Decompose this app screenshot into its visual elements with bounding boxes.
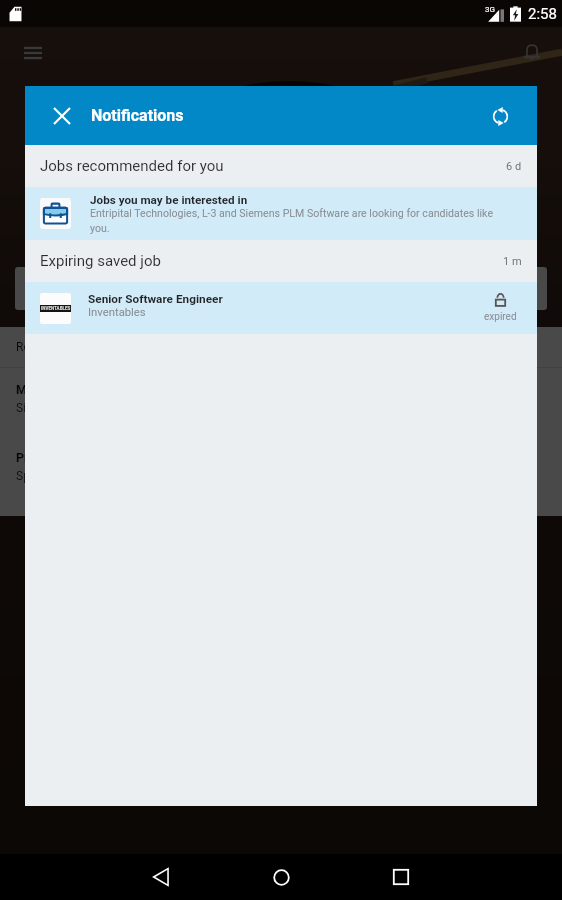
- button[interactable]: INVENTABLES: [25, 282, 537, 334]
- button[interactable]: Refresh: [481, 97, 519, 135]
- staticText: Recommended for you: [16, 340, 137, 354]
- staticText: Jobs recommended for you: [40, 157, 224, 175]
- staticText: 2:58: [528, 5, 557, 23]
- button[interactable]: Jobs you may be interested in: [25, 187, 537, 240]
- staticText: Expiring saved job: [40, 252, 161, 270]
- button[interactable]: [15, 267, 547, 310]
- staticText: Jobs you may be interested in: [90, 193, 248, 207]
- staticText: Product Designer: [16, 450, 114, 465]
- button[interactable]: Back: [131, 854, 191, 900]
- staticText: Notifications: [91, 106, 184, 125]
- staticText: Entripital Technologies, L-3 and Siemens…: [90, 207, 498, 234]
- button[interactable]: Mechanical Engineer: [0, 368, 562, 436]
- staticText: Mechanical Engineer: [16, 382, 134, 397]
- staticText: 6 d: [506, 160, 522, 173]
- staticText: Siemens: [16, 401, 63, 415]
- button[interactable]: Menu: [13, 33, 53, 73]
- button[interactable]: Recents: [371, 854, 431, 900]
- button[interactable]: Notifications: [513, 32, 551, 70]
- staticText: expired: [484, 311, 517, 323]
- staticText: 1 m: [503, 255, 522, 268]
- staticText: Inventables: [88, 306, 146, 319]
- staticText: 3G: [485, 5, 495, 14]
- staticText: INVENTABLES: [41, 306, 71, 311]
- staticText: Senior Software Engineer: [88, 292, 223, 306]
- button[interactable]: Home: [251, 854, 311, 900]
- staticText: Sparkfun: [16, 469, 64, 483]
- button[interactable]: Close: [43, 97, 81, 135]
- button[interactable]: Product Designer: [0, 436, 562, 504]
- button[interactable]: Recommended for you: [0, 327, 562, 367]
